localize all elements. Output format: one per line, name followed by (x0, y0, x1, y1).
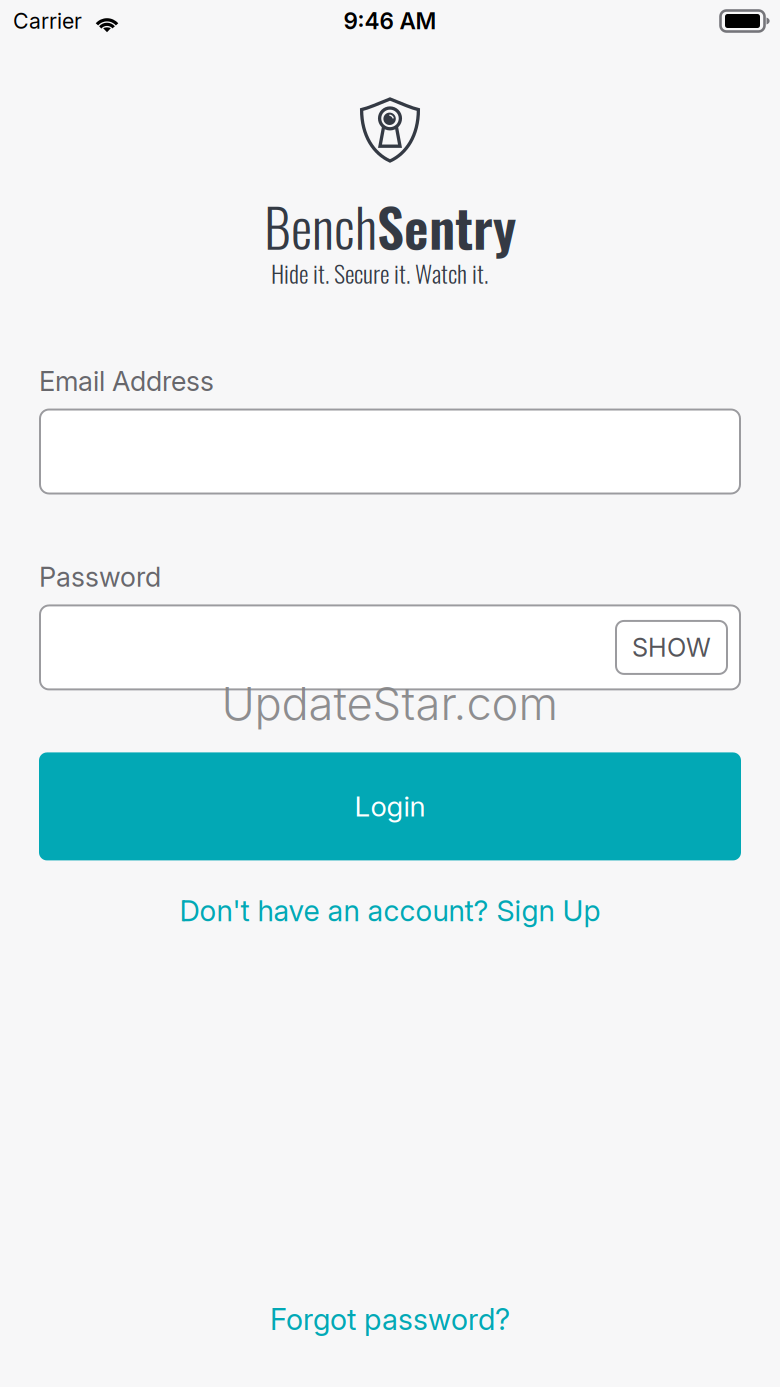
staticText: Email Address (39, 365, 214, 397)
button[interactable]: SHOW (616, 621, 727, 674)
button[interactable]: Login (39, 752, 741, 860)
button[interactable]: Password (39, 604, 741, 690)
staticText: Forgot password? (270, 1301, 510, 1337)
button[interactable]: Email Address (39, 408, 741, 494)
button[interactable]: Forgot password? (256, 1295, 524, 1343)
staticText: 9:46 AM (343, 7, 436, 35)
staticText: Bench (264, 186, 377, 265)
staticText: SHOW (632, 632, 711, 663)
staticText: Login (354, 789, 425, 823)
button[interactable]: Don't have an account? Sign Up (165, 887, 614, 934)
staticText: Hide it. Secure it. Watch it. (271, 255, 488, 291)
staticText: Don't have an account? Sign Up (179, 893, 600, 928)
staticText: Password (39, 560, 161, 593)
staticText: UpdateStar.com (221, 676, 558, 731)
staticText: Sentry (377, 186, 516, 265)
staticText: Carrier (13, 8, 82, 34)
